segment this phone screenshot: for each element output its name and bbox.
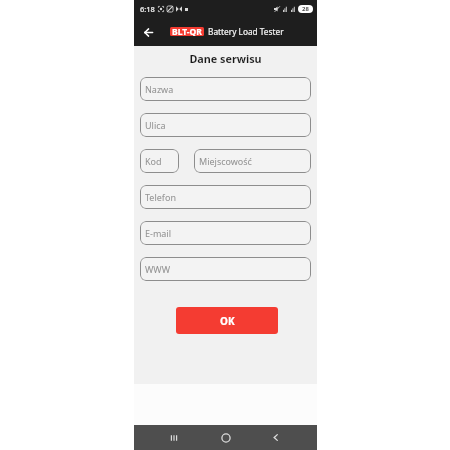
staticText: WWW bbox=[145, 263, 171, 275]
staticText: E-mail bbox=[145, 227, 172, 239]
button[interactable]: Miejscowość bbox=[194, 149, 311, 173]
button[interactable]: Kod bbox=[140, 149, 179, 173]
button[interactable]: OK bbox=[176, 307, 278, 334]
button[interactable]: WWW bbox=[140, 257, 311, 281]
staticText: Dane serwisu bbox=[134, 51, 317, 66]
staticText: Battery Load Tester bbox=[208, 26, 284, 37]
staticText: Nazwa bbox=[145, 83, 174, 95]
button[interactable]: Telefon bbox=[140, 185, 311, 209]
button[interactable]: Recents bbox=[160, 425, 188, 450]
button[interactable]: Ulica bbox=[140, 113, 311, 137]
button[interactable]: Back bbox=[261, 425, 289, 450]
button[interactable]: Back bbox=[138, 22, 158, 42]
staticText: Ulica bbox=[145, 119, 166, 131]
button[interactable]: Home bbox=[212, 425, 240, 450]
staticText: Miejscowość bbox=[199, 155, 252, 167]
button[interactable]: E-mail bbox=[140, 221, 311, 245]
staticText: Telefon bbox=[145, 191, 176, 203]
staticText: 6:18 bbox=[140, 4, 155, 14]
staticText: BLT-QR bbox=[172, 27, 202, 36]
staticText: 28 bbox=[302, 5, 309, 13]
button[interactable]: Nazwa bbox=[140, 77, 311, 101]
staticText: Kod bbox=[145, 155, 162, 167]
staticText: OK bbox=[220, 314, 235, 328]
